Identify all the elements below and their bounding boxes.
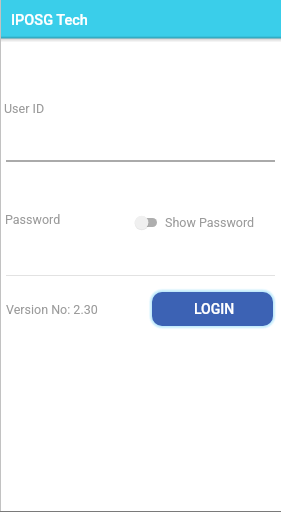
staticText: Show Password bbox=[165, 215, 255, 230]
staticText: User ID bbox=[4, 101, 45, 116]
staticText: Version No: 2.30 bbox=[6, 302, 98, 317]
button[interactable]: Show password toggle bbox=[133, 211, 255, 233]
staticText: LOGIN bbox=[194, 301, 235, 317]
button[interactable]: User ID bbox=[6, 95, 275, 162]
staticText: Password bbox=[5, 212, 61, 227]
staticText: IPOSG Tech bbox=[11, 12, 88, 29]
other: Show password toggle bbox=[133, 211, 159, 233]
button[interactable]: Password bbox=[0, 205, 130, 231]
button[interactable]: LOGIN bbox=[152, 292, 273, 326]
